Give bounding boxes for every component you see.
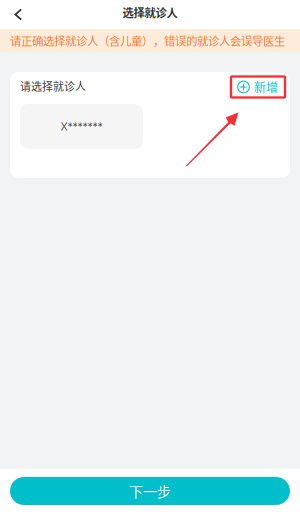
staticText: 下一步: [129, 481, 171, 501]
button[interactable]: 新增: [231, 74, 285, 97]
staticText: 选择就诊人: [122, 4, 177, 20]
staticText: 请正确选择就诊人（含儿童），错误的就诊人会误导医生: [10, 32, 285, 49]
staticText: X*******: [60, 120, 102, 133]
button[interactable]: Back: [0, 0, 36, 29]
button[interactable]: 下一步: [10, 477, 290, 505]
staticText: 新增: [254, 78, 278, 96]
staticText: 请选择就诊人: [20, 78, 86, 94]
